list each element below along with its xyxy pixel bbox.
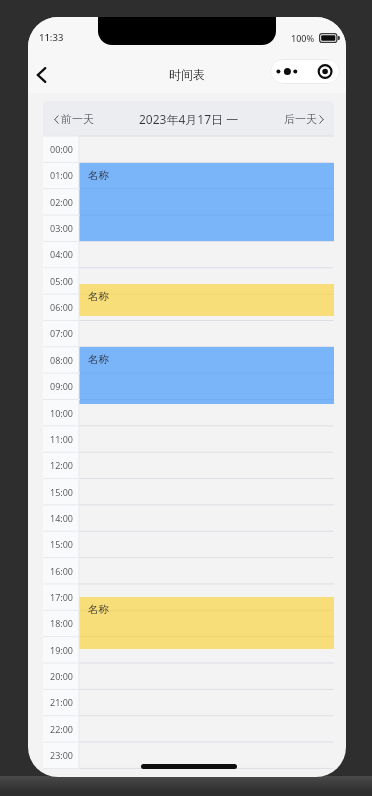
staticText: 00:00	[50, 143, 74, 155]
staticText: 05:00	[50, 275, 74, 287]
staticText: 名称	[88, 169, 109, 182]
staticText: 07:00	[50, 327, 74, 339]
staticText: 12:00	[50, 459, 74, 471]
staticText: 03:00	[50, 222, 74, 234]
staticText: 前一天	[61, 112, 94, 126]
staticText: 15:00	[50, 538, 74, 550]
staticText: 18:00	[50, 617, 74, 629]
staticText: 名称	[88, 353, 109, 366]
staticText: 09:00	[50, 380, 74, 392]
staticText: 10:00	[50, 407, 74, 419]
staticText: 20:00	[50, 670, 74, 682]
staticText: 08:00	[50, 354, 74, 366]
button[interactable]: More options	[270, 59, 340, 84]
staticText: 16:00	[50, 565, 74, 577]
staticText: 01:00	[50, 169, 74, 181]
staticText: 14:00	[50, 512, 74, 524]
staticText: 15:00	[50, 486, 74, 498]
staticText: 100%	[291, 32, 315, 44]
button[interactable]: 后一天	[284, 112, 324, 126]
staticText: 17:00	[50, 591, 74, 603]
button[interactable]: 名称	[79, 284, 334, 316]
staticText: 19:00	[50, 644, 74, 656]
staticText: 04:00	[50, 248, 74, 260]
staticText: 06:00	[50, 301, 74, 313]
staticText: 时间表	[169, 67, 205, 82]
staticText: 11:00	[50, 433, 74, 445]
staticText: 后一天	[284, 112, 317, 126]
button[interactable]: 名称	[79, 597, 334, 649]
button[interactable]: 前一天	[54, 112, 94, 126]
staticText: 22:00	[50, 723, 74, 735]
staticText: 名称	[88, 603, 109, 616]
button[interactable]: 名称	[79, 347, 334, 404]
button[interactable]: 名称	[79, 163, 334, 241]
button[interactable]: Back	[28, 60, 58, 90]
staticText: 名称	[88, 290, 109, 303]
staticText: 02:00	[50, 196, 74, 208]
staticText: 21:00	[50, 696, 74, 708]
staticText: 2023年4月17日 一	[139, 111, 239, 127]
staticText: 23:00	[50, 749, 74, 761]
staticText: 11:33	[39, 31, 64, 44]
